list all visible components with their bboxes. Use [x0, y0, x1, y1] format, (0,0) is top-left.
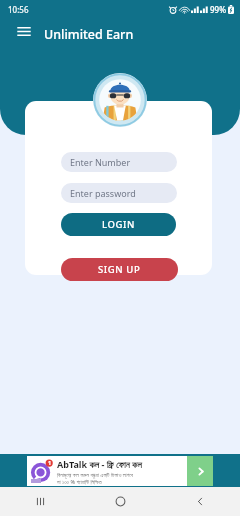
button[interactable]: Back — [160, 487, 240, 516]
button[interactable]: Enter password — [61, 183, 177, 203]
button[interactable]: 1 — [27, 456, 213, 486]
staticText: না ১০০ % গ্যারান্টি নিশ্চিত — [57, 478, 102, 485]
staticText: 10:56 — [8, 4, 29, 15]
button[interactable]: Home — [80, 487, 160, 516]
staticText: 99% — [210, 4, 226, 15]
staticText: Enter Number — [70, 156, 131, 168]
button[interactable]: Recent apps — [0, 487, 80, 516]
staticText: LOGIN — [102, 218, 135, 231]
staticText: Enter password — [70, 187, 136, 199]
button[interactable]: Open navigation menu — [11, 18, 37, 44]
staticText: AbTalk কল - ফ্রি ফোন কল — [57, 458, 142, 470]
staticText: বিনামূল্যে কল করুন বন্ধুরা একটি টাকাও লা… — [57, 471, 134, 478]
staticText: Unlimited Earn — [44, 26, 134, 43]
button[interactable]: Enter Number — [61, 152, 177, 172]
button[interactable]: SIGN UP — [61, 258, 178, 281]
button[interactable]: LOGIN — [61, 213, 176, 236]
staticText: 1 — [48, 459, 52, 466]
button[interactable]: Open ad — [187, 456, 213, 486]
staticText: SIGN UP — [98, 263, 141, 276]
